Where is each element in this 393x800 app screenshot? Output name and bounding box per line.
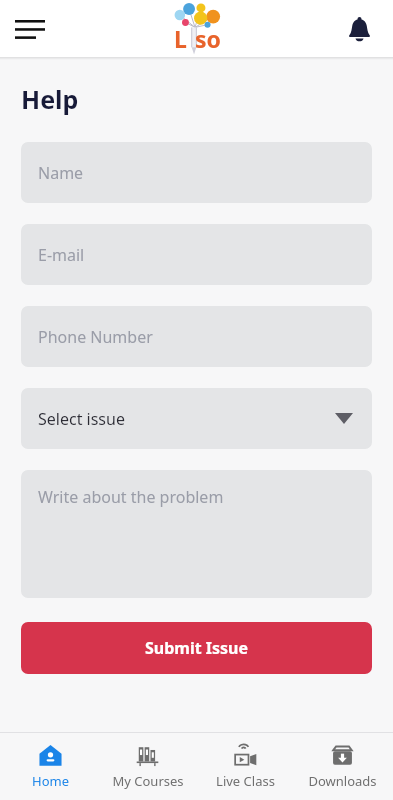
staticText: L	[174, 23, 187, 54]
button[interactable]: Downloads	[295, 733, 390, 800]
button[interactable]: Menu	[6, 5, 54, 53]
staticText: Help	[21, 82, 79, 116]
staticText: Name	[38, 162, 84, 184]
button[interactable]: Select issue	[21, 388, 372, 449]
staticText: E-mail	[38, 244, 85, 266]
button[interactable]: My Courses	[100, 733, 195, 800]
staticText: Home	[32, 772, 69, 790]
staticText: Phone Number	[38, 326, 153, 348]
staticText: Select issue	[38, 408, 335, 430]
staticText: Downloads	[308, 772, 377, 790]
staticText: Write about the problem	[38, 486, 224, 508]
staticText: Submit Issue	[145, 637, 249, 659]
staticText: My Courses	[112, 772, 184, 790]
button[interactable]: Write about the problem	[21, 470, 372, 598]
staticText: so	[195, 23, 221, 54]
button[interactable]: Name	[21, 142, 372, 203]
button[interactable]: Submit Issue	[21, 622, 372, 674]
button[interactable]: Home	[3, 733, 98, 800]
staticText: Live Class	[216, 772, 275, 790]
button[interactable]: Phone Number	[21, 306, 372, 367]
button[interactable]: Live Class	[198, 733, 293, 800]
button[interactable]: E-mail	[21, 224, 372, 285]
button[interactable]: Notifications	[337, 7, 381, 51]
